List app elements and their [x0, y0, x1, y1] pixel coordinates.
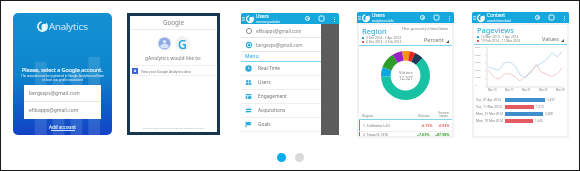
staticText: Screen views	[438, 110, 449, 118]
staticText: Mon, 31 Mar 2014	[476, 112, 505, 116]
button[interactable]: View your Google Analytics data	[132, 66, 215, 75]
staticText: Acquisitions	[258, 107, 286, 114]
staticText: 12 Mar 2014 - 1 Apr 2014	[481, 35, 519, 39]
staticText: Mar 13	[488, 88, 497, 92]
staticText: Mar 25	[539, 88, 548, 92]
staticText: 2. Texas (6.13%)	[363, 132, 389, 136]
staticText: Mar 21	[522, 88, 531, 92]
button[interactable]: efibapps@gmail.com	[24, 102, 101, 118]
staticText: Mon, 10 Mar 2014	[476, 119, 505, 123]
staticText: 1000	[475, 75, 481, 78]
button[interactable]: efibapps@gmail.com	[241, 24, 321, 37]
button[interactable]: bergezps@gmail.com	[24, 85, 101, 101]
button[interactable]: Mon, 31 Mar 2014	[474, 110, 567, 117]
staticText: Google	[163, 18, 184, 26]
staticText: 12,327	[399, 75, 413, 81]
button[interactable]: More options	[330, 15, 338, 23]
button[interactable]: Users	[241, 76, 321, 89]
button[interactable]: Real-Time	[241, 62, 321, 75]
staticText: 0	[475, 83, 477, 86]
staticText: 3,288	[545, 112, 553, 116]
staticText: Region	[362, 113, 374, 118]
button[interactable]: Engagement	[241, 90, 321, 103]
staticText: Pageviews	[477, 25, 514, 35]
staticText: 3,497	[547, 98, 555, 102]
staticText: Add account	[49, 124, 76, 130]
staticText: Engagement	[258, 93, 287, 100]
button[interactable]: Refresh	[303, 14, 312, 23]
staticText: The account must be registered in Google…	[21, 74, 104, 82]
button[interactable]: Date range	[547, 13, 556, 22]
button[interactable]: Mon, 10 Mar 2014	[474, 117, 567, 124]
staticText: 1. California (+%)	[363, 123, 390, 128]
staticText: Filter ga:country=United States	[402, 27, 449, 31]
staticText: Percent	[424, 36, 444, 43]
button[interactable]: Refresh	[418, 13, 427, 22]
button[interactable]: Page 1	[277, 153, 286, 162]
button[interactable]: Page 2	[295, 153, 304, 162]
staticText: 1,645	[535, 119, 543, 123]
staticText: Tue, 01 Apr 2014	[476, 98, 505, 102]
staticText: Users	[258, 79, 271, 86]
button[interactable]: Add account	[45, 123, 80, 132]
staticText: Please, select a Google account.	[22, 66, 103, 73]
button[interactable]: More options	[560, 14, 568, 22]
staticText: gAnalytics would like to:	[145, 55, 202, 62]
staticText: Mar 29	[556, 88, 565, 92]
staticText: 4 Dec 2013 - 2 Feb 2014	[366, 40, 402, 44]
button[interactable]: Refresh	[533, 13, 542, 22]
button[interactable]: Date range	[317, 14, 326, 23]
button[interactable]: Acquisitions	[241, 104, 321, 117]
staticText: -6.13%	[421, 123, 433, 128]
staticText: Menu	[245, 53, 259, 60]
button[interactable]: Goals	[241, 118, 321, 131]
button[interactable]: Tue, 01 Apr 2014	[474, 96, 567, 103]
staticText: Goals	[258, 121, 271, 128]
staticText: bergezps@gmail.com	[256, 42, 303, 48]
staticText: Users	[256, 13, 269, 20]
staticText: +87.98%	[435, 132, 450, 136]
staticText: Mar 17	[505, 88, 514, 92]
staticText: Values	[542, 35, 559, 42]
staticText: analytics.mobile	[372, 19, 394, 23]
staticText: Real-Time	[258, 65, 281, 72]
staticText: bergezps@gmail.com	[29, 90, 80, 97]
staticText: 5000	[475, 45, 481, 48]
staticText: 4000	[475, 53, 481, 56]
staticText: +7.63%	[417, 132, 430, 136]
staticText: Analytics	[49, 20, 88, 33]
button[interactable]: Tue, 11 Mar 2014	[474, 103, 567, 110]
staticText: www.historedroid	[487, 19, 512, 23]
staticText: summary.website	[256, 20, 281, 24]
staticText: 3 Feb 2014 - 2 Apr 2014	[366, 36, 401, 40]
staticText: Region	[362, 26, 387, 36]
button[interactable]: 1. California (+%)	[359, 120, 452, 131]
staticText: By continuing, you allow this app and Go…	[143, 127, 205, 130]
staticText: 19 Feb 2014 - 11 Mar 2014	[481, 39, 521, 43]
staticText: efibapps@gmail.com	[256, 28, 302, 34]
staticText: Tue, 11 Mar 2014	[476, 105, 505, 109]
staticText: View your Google Analytics data	[141, 69, 191, 73]
staticText: Visitors	[399, 70, 413, 75]
staticText: Users	[372, 12, 385, 19]
staticText: Content	[487, 12, 506, 19]
staticText: 3000	[475, 60, 481, 63]
staticText: -0.92%	[438, 123, 450, 128]
staticText: efibapps@gmail.com	[29, 107, 79, 114]
button[interactable]: bergezps@gmail.com	[241, 38, 321, 51]
staticText: 1,813	[536, 105, 544, 109]
staticText: G	[178, 36, 187, 51]
button[interactable]: More options	[445, 14, 453, 22]
button[interactable]: 2. Texas (6.13%)	[359, 132, 452, 136]
button[interactable]: Date range	[432, 13, 441, 22]
staticText: Visitors	[418, 113, 430, 118]
staticText: 2000	[475, 68, 481, 71]
